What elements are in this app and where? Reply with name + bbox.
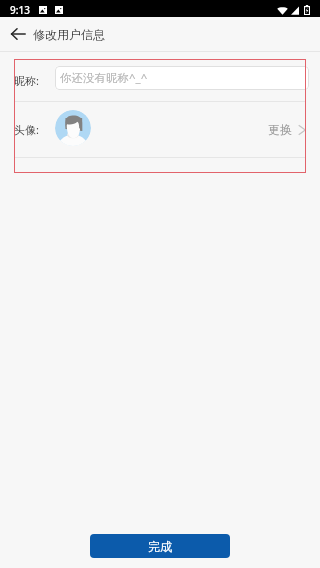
staticText: 9:13 <box>10 3 30 17</box>
staticText: 更换 <box>268 122 292 137</box>
staticText: 昵称: <box>14 73 39 88</box>
staticText: 头像: <box>14 122 39 137</box>
button[interactable]: 你还没有昵称^_^ <box>60 66 309 90</box>
staticText: 修改用户信息 <box>33 27 105 42</box>
staticText: 完成 <box>148 539 172 554</box>
button[interactable]: 完成 <box>90 534 230 558</box>
button[interactable]: 头像: <box>14 102 306 157</box>
button[interactable]: Back <box>0 17 33 51</box>
staticText: 你还没有昵称^_^ <box>60 70 148 86</box>
